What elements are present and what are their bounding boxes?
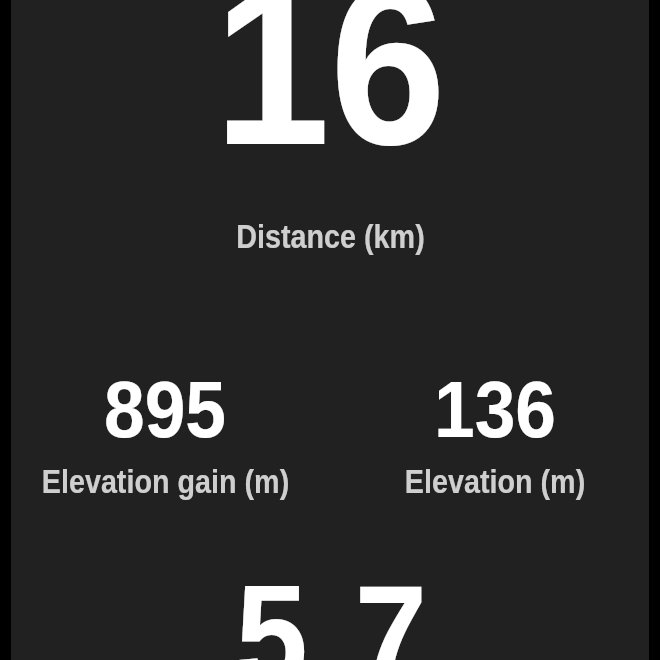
staticText: Elevation (m)	[405, 462, 585, 500]
button[interactable]: 136	[330, 330, 660, 520]
staticText: 5.7	[235, 556, 433, 660]
button[interactable]: 5.7	[0, 530, 660, 660]
button[interactable]: 16	[0, 0, 660, 290]
staticText: 136	[434, 365, 556, 454]
staticText: 895	[104, 365, 226, 454]
staticText: 16	[214, 0, 446, 193]
staticText: Elevation gain (m)	[42, 462, 289, 500]
staticText: Distance (km)	[236, 217, 425, 255]
button[interactable]: 895	[0, 330, 330, 520]
